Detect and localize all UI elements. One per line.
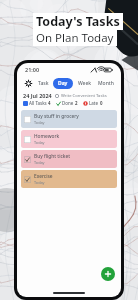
staticText: Month xyxy=(98,80,114,87)
button[interactable] xyxy=(24,116,31,123)
staticText: Today's Tasks xyxy=(36,13,120,30)
staticText: On Plan Today xyxy=(36,30,114,46)
button[interactable]: Buy stuff in grocery xyxy=(21,110,117,128)
staticText: Task xyxy=(38,80,49,87)
staticText: Buy flight ticket xyxy=(34,153,71,160)
staticText: Today xyxy=(34,120,45,125)
staticText: 0 xyxy=(100,100,103,106)
staticText: Homework xyxy=(34,133,60,140)
staticText: Week xyxy=(78,80,92,87)
staticText: Late xyxy=(89,100,99,106)
button[interactable] xyxy=(24,176,31,183)
button[interactable]: Buy flight ticket xyxy=(21,150,117,168)
staticText: Today xyxy=(34,140,45,145)
staticText: Buy stuff in grocery xyxy=(34,113,79,120)
button[interactable]: Exercise xyxy=(21,170,117,188)
staticText: 24 Jul 2024 xyxy=(23,92,52,99)
staticText: Done xyxy=(62,100,74,106)
button[interactable]: Task xyxy=(37,78,50,89)
button[interactable] xyxy=(24,136,31,143)
button[interactable]: Day xyxy=(53,78,73,89)
staticText: 4 xyxy=(48,100,51,106)
button[interactable] xyxy=(24,156,31,163)
button[interactable]: Late xyxy=(83,100,103,106)
button[interactable]: Done xyxy=(56,100,78,106)
staticText: Day xyxy=(58,80,68,87)
button[interactable]: All Tasks xyxy=(23,100,51,106)
button[interactable]: Month xyxy=(97,78,115,89)
staticText: Today xyxy=(34,180,45,185)
staticText: 2 xyxy=(75,100,78,106)
staticText: Today xyxy=(34,160,45,165)
button[interactable]: Add task xyxy=(101,267,115,281)
staticText: 21:00 xyxy=(25,66,40,73)
staticText: All Tasks xyxy=(29,100,47,106)
staticText: Exercise xyxy=(34,173,53,180)
button[interactable]: Settings xyxy=(23,78,34,89)
button[interactable]: Week xyxy=(77,78,93,89)
staticText: Write Convenient Tasks xyxy=(61,93,107,99)
button[interactable]: Homework xyxy=(21,130,117,148)
